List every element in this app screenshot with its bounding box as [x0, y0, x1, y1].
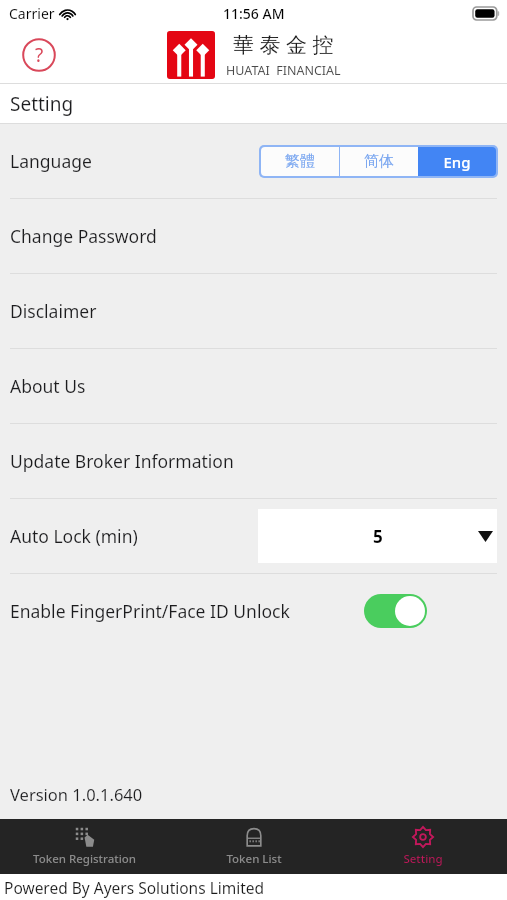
staticText: Change Password	[10, 224, 157, 248]
staticText: Update Broker Information	[10, 449, 234, 473]
button[interactable]: Token Registration	[0, 819, 169, 874]
button[interactable]: Disclaimer	[0, 274, 507, 348]
staticText: 11:56 AM	[223, 4, 285, 23]
button[interactable]: Setting	[338, 819, 507, 874]
button[interactable]: Enable FingerPrint/Face ID Unlock	[364, 594, 427, 628]
staticText: Token List	[226, 851, 282, 867]
button[interactable]: Change Password	[0, 199, 507, 273]
button[interactable]: 繁體	[261, 147, 339, 176]
button[interactable]: Update Broker Information	[0, 424, 507, 498]
button[interactable]: 简体	[340, 147, 418, 176]
staticText: Version 1.0.1.640	[10, 783, 143, 805]
staticText: Disclaimer	[10, 299, 97, 323]
staticText: Auto Lock (min)	[10, 524, 138, 548]
staticText: About Us	[10, 374, 86, 398]
button[interactable]: Help	[22, 38, 56, 72]
staticText: Carrier	[9, 4, 55, 23]
staticText: 简体	[364, 152, 394, 171]
staticText: Setting	[10, 91, 74, 117]
staticText: 繁體	[285, 152, 315, 171]
button[interactable]: Eng	[418, 147, 496, 176]
staticText: Eng	[443, 152, 471, 172]
staticText: ?	[35, 42, 44, 68]
staticText: HUATAI FINANCIAL	[226, 62, 341, 79]
staticText: 華 泰 金 控	[233, 30, 334, 59]
staticText: Language	[10, 149, 92, 173]
staticText: Setting	[403, 851, 443, 867]
button[interactable]: About Us	[0, 349, 507, 423]
button[interactable]: Token List	[169, 819, 338, 874]
staticText: Enable FingerPrint/Face ID Unlock	[10, 599, 290, 623]
staticText: 5	[373, 525, 383, 548]
staticText: Token Registration	[33, 851, 136, 867]
button[interactable]: 5	[258, 509, 497, 563]
staticText: Powered By Ayers Solutions Limited	[4, 877, 265, 898]
